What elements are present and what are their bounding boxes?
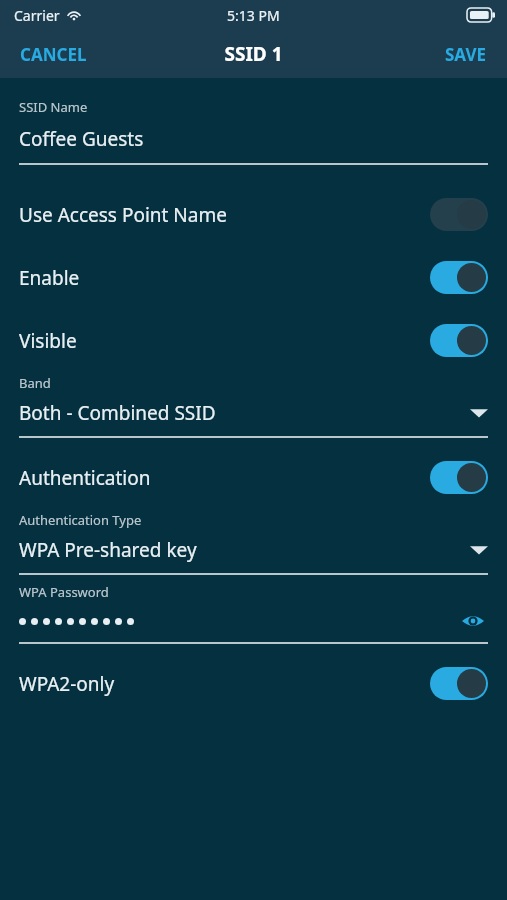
button[interactable]: Off bbox=[430, 198, 488, 231]
button[interactable]: Show password bbox=[458, 610, 488, 632]
staticText: Authentication Type bbox=[19, 511, 142, 529]
button[interactable]: SAVE bbox=[425, 33, 507, 76]
button[interactable]: WPA2-only bbox=[0, 652, 507, 715]
staticText: Enable bbox=[19, 265, 430, 291]
button[interactable]: Band bbox=[0, 374, 507, 438]
staticText: SAVE bbox=[445, 43, 487, 66]
button[interactable]: WPA Password bbox=[0, 583, 507, 644]
button[interactable]: Enable bbox=[0, 246, 507, 309]
button[interactable]: Use Access Point Name bbox=[0, 183, 507, 246]
staticText: Band bbox=[19, 374, 51, 392]
staticText: Both - Combined SSID bbox=[19, 400, 470, 426]
button[interactable]: On bbox=[430, 461, 488, 494]
staticText: 5:13 PM bbox=[227, 6, 280, 25]
staticText: Visible bbox=[19, 328, 430, 354]
button[interactable]: On bbox=[430, 667, 488, 700]
button[interactable]: On bbox=[430, 261, 488, 294]
button[interactable]: Visible bbox=[0, 309, 507, 372]
staticText: Coffee Guests bbox=[19, 126, 144, 152]
staticText: Carrier bbox=[14, 6, 60, 25]
staticText: SSID Name bbox=[19, 98, 88, 116]
other: Expand bbox=[470, 544, 488, 556]
button[interactable]: Authentication Type bbox=[0, 511, 507, 575]
button[interactable]: CANCEL bbox=[0, 33, 107, 76]
staticText: WPA Password bbox=[19, 583, 109, 601]
staticText: CANCEL bbox=[20, 43, 87, 66]
staticText: WPA Pre-shared key bbox=[19, 537, 470, 563]
staticText: WPA2-only bbox=[19, 671, 430, 697]
staticText: Authentication bbox=[19, 465, 430, 491]
staticText: Use Access Point Name bbox=[19, 202, 430, 228]
other: Expand bbox=[470, 407, 488, 419]
button[interactable]: On bbox=[430, 324, 488, 357]
staticText: SSID 1 bbox=[224, 41, 283, 67]
button[interactable]: Authentication bbox=[0, 446, 507, 509]
button[interactable]: SSID Name bbox=[0, 98, 507, 165]
